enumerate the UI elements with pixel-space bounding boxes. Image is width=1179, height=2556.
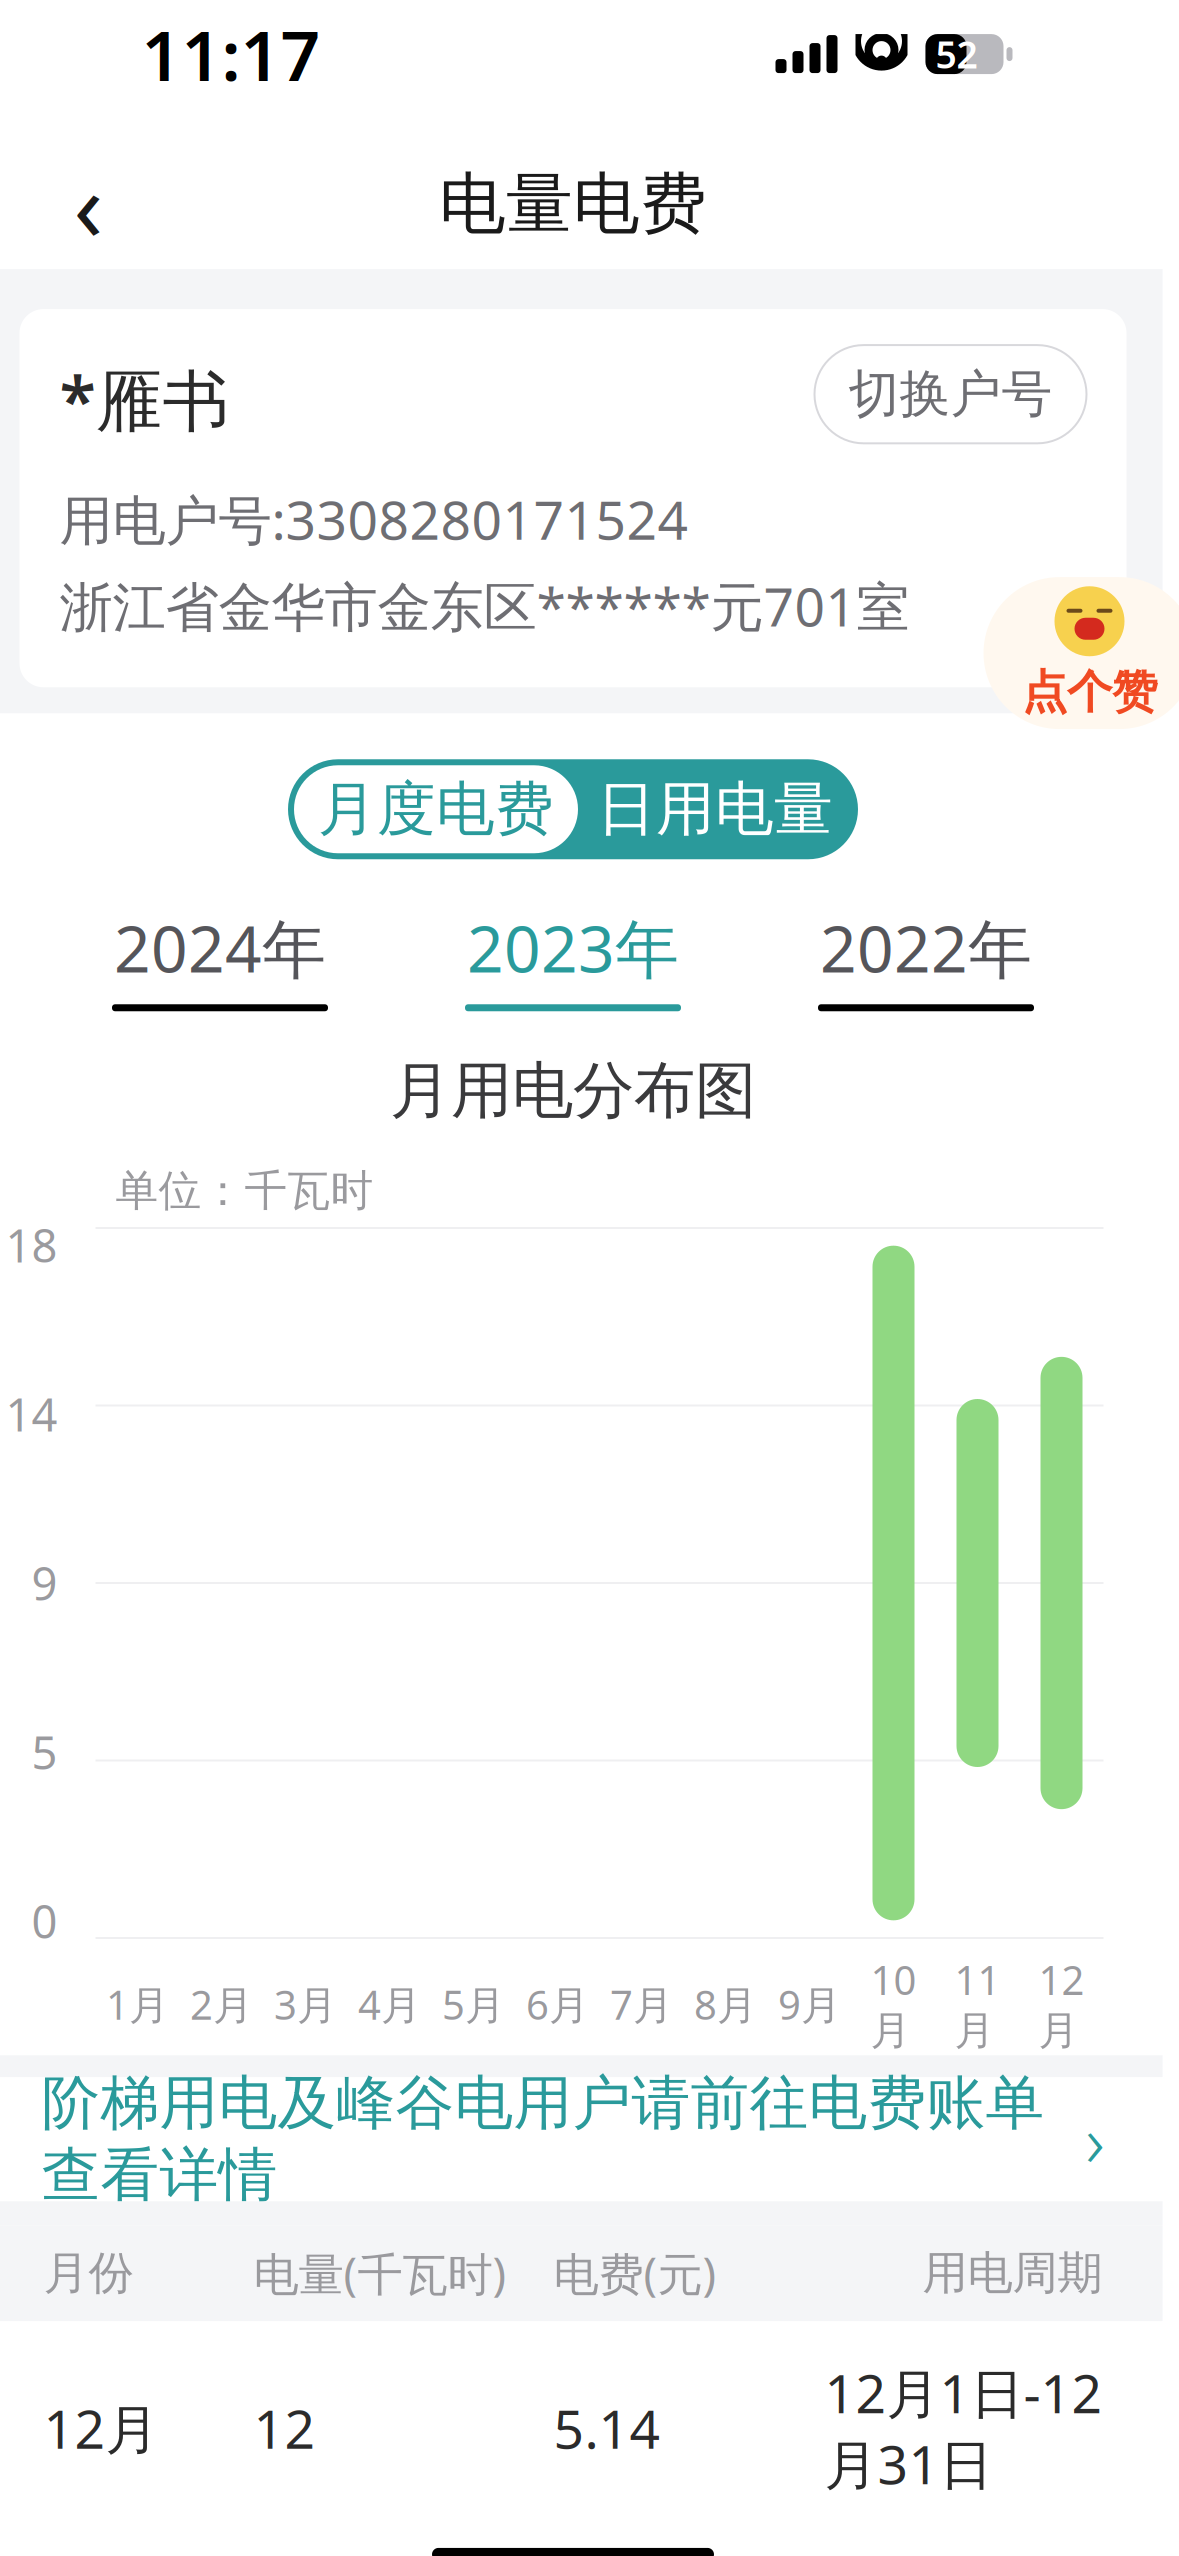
staticText: 0 bbox=[31, 1891, 57, 1951]
staticText: 9 bbox=[31, 1553, 57, 1613]
staticText: 用电周期 bbox=[922, 2245, 1102, 2301]
staticText: 2月 bbox=[190, 1978, 253, 2031]
staticText: 5 bbox=[31, 1722, 57, 1782]
staticText: 单位：千瓦时 bbox=[115, 1165, 373, 1217]
button[interactable]: 2024年 bbox=[43, 905, 396, 1011]
staticText: 月度电费 bbox=[318, 773, 554, 845]
staticText: ‹ bbox=[73, 140, 103, 268]
staticText: 电费(元) bbox=[553, 2243, 716, 2303]
staticText: 月用电分布图 bbox=[390, 1053, 756, 1129]
staticText: 2023年 bbox=[467, 905, 679, 990]
staticText: 12 bbox=[253, 2393, 315, 2463]
staticText: 用电户号:3308280171524 bbox=[59, 484, 688, 554]
staticText: 12月 bbox=[43, 2393, 158, 2463]
staticText: 3月 bbox=[274, 1978, 337, 2031]
staticText: 电量(千瓦时) bbox=[253, 2243, 506, 2303]
staticText: 52 bbox=[935, 29, 977, 79]
button[interactable]: 2022年 bbox=[749, 905, 1102, 1011]
staticText: *雁书 bbox=[59, 355, 229, 444]
staticText: 5.14 bbox=[553, 2393, 660, 2463]
button[interactable]: 月度电费 bbox=[294, 765, 578, 853]
button[interactable]: 2023年 bbox=[396, 905, 749, 1011]
staticText: 1月 bbox=[106, 1978, 169, 2031]
staticText: 日用电量 bbox=[597, 773, 833, 845]
staticText: 18 bbox=[5, 1215, 57, 1275]
button[interactable]: 切换户号 bbox=[814, 345, 1086, 443]
staticText: 2022年 bbox=[820, 905, 1032, 990]
staticText: 阶梯用电及峰谷电用户请前往电费账单查看详情 bbox=[41, 2067, 1044, 2211]
staticText: 电量电费 bbox=[439, 163, 707, 245]
staticText: 12月 bbox=[1038, 1953, 1084, 2055]
staticText: 7月 bbox=[610, 1978, 673, 2031]
staticText: 5月 bbox=[442, 1978, 505, 2031]
staticText: 2024年 bbox=[114, 905, 326, 990]
button[interactable]: 阶梯用电及峰谷电用户请前往电费账单查看详情 bbox=[0, 2077, 1162, 2201]
button[interactable]: 日用电量 bbox=[578, 765, 852, 853]
staticText: 6月 bbox=[526, 1978, 589, 2031]
staticText: 8月 bbox=[694, 1978, 757, 2031]
button[interactable]: 点个赞 bbox=[983, 577, 1179, 729]
staticText: 14 bbox=[5, 1384, 57, 1444]
staticText: 10月 bbox=[870, 1953, 916, 2055]
staticText: 点个赞 bbox=[1022, 664, 1157, 720]
button[interactable]: *雁书 bbox=[19, 309, 1126, 687]
staticText: 4月 bbox=[358, 1978, 421, 2031]
staticText: 切换户号 bbox=[848, 363, 1052, 425]
staticText: › bbox=[1085, 2091, 1104, 2187]
staticText: 11月 bbox=[954, 1953, 1000, 2055]
staticText: 浙江省金华市金东区******元701室 bbox=[59, 570, 909, 641]
button[interactable]: Back bbox=[33, 149, 143, 259]
staticText: 月份 bbox=[43, 2245, 133, 2301]
staticText: 12月1日-12月31日 bbox=[824, 2357, 1102, 2499]
staticText: 9月 bbox=[778, 1978, 841, 2031]
staticText: 11:17 bbox=[141, 8, 320, 100]
